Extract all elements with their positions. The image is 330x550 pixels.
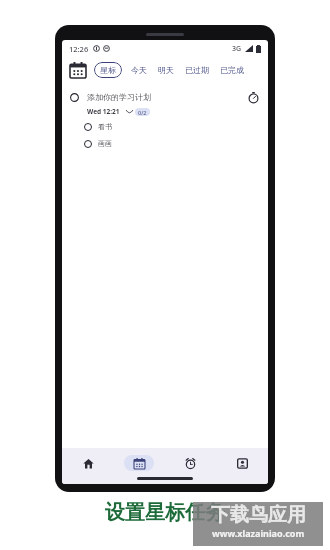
button[interactable]: 看书 xyxy=(62,122,268,131)
button[interactable]: Alarm xyxy=(164,451,216,474)
staticText: 设置星标任务 xyxy=(105,500,225,525)
button[interactable]: 已过期 xyxy=(183,62,211,78)
staticText: 12:26 xyxy=(69,44,89,54)
staticText: 已完成 xyxy=(220,65,244,75)
button[interactable]: 明天 xyxy=(156,62,176,78)
staticText: Wed 12:21 xyxy=(87,107,120,116)
staticText: 添加你的学习计划 xyxy=(87,92,151,102)
button[interactable]: Calendar xyxy=(113,451,164,474)
button[interactable]: 星标 xyxy=(94,62,122,78)
staticText: 已过期 xyxy=(185,65,209,75)
staticText: 下载鸟应用 xyxy=(211,503,306,527)
button[interactable]: Calendar xyxy=(67,59,89,81)
button[interactable]: 已完成 xyxy=(218,62,246,78)
button[interactable]: 今天 xyxy=(129,62,149,78)
staticText: www.xlazainiao.com xyxy=(212,527,305,539)
button[interactable]: 添加你的学习计划 xyxy=(62,88,268,104)
staticText: 明天 xyxy=(158,65,174,75)
staticText: 0/2 xyxy=(138,109,147,116)
staticText: 看书 xyxy=(98,122,112,131)
button[interactable]: Profile xyxy=(216,451,268,474)
staticText: 星标 xyxy=(100,65,116,75)
staticText: 今天 xyxy=(131,65,147,75)
button[interactable]: Timer xyxy=(246,90,260,104)
staticText: 3G xyxy=(232,44,242,54)
button[interactable]: 画画 xyxy=(62,139,268,148)
staticText: 画画 xyxy=(98,139,112,148)
button[interactable]: Home xyxy=(62,451,113,474)
